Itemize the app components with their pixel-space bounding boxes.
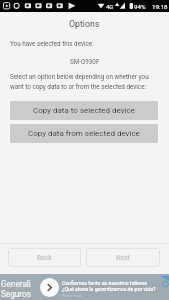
staticText: 94% [134, 3, 146, 10]
button[interactable]: Generali [0, 274, 169, 300]
staticText: 19:18 [152, 3, 168, 10]
staticText: SM-G930F [70, 58, 100, 65]
button[interactable]: Next [86, 248, 160, 267]
button[interactable]: Copy data to selected device [10, 101, 158, 120]
staticText: 4G [106, 3, 114, 10]
staticText: Saber más [62, 293, 82, 298]
staticText: Confiamos tanto en nuestros talleres [62, 280, 147, 286]
staticText: Copy data to selected device [33, 106, 135, 115]
button[interactable]: Copy data from selected device [10, 124, 158, 143]
button[interactable]: Back [8, 248, 81, 267]
staticText: Copy data from selected device [28, 129, 140, 138]
staticText: Back [37, 254, 52, 262]
staticText: You have selected this device: [10, 40, 94, 47]
staticText: ¿Qué ahora la garantizamos de por vida? [62, 286, 156, 292]
staticText: Seguros [1, 289, 31, 299]
staticText: Select an option below depending on whet… [10, 73, 161, 90]
staticText: Generali [1, 279, 31, 289]
other: Open ad [40, 278, 59, 297]
staticText: Next [116, 254, 130, 262]
staticText: Options [69, 19, 100, 29]
